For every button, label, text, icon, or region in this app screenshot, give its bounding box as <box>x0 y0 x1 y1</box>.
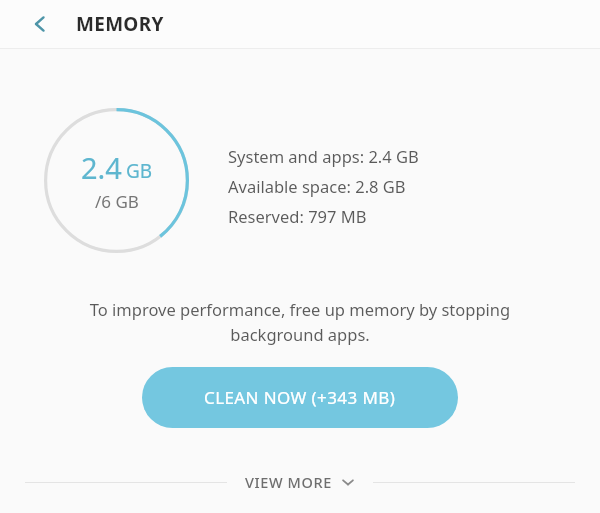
staticText: /6 GB <box>95 190 139 213</box>
staticText: Reserved: 797 MB <box>228 205 367 227</box>
staticText: GB <box>126 158 153 184</box>
button[interactable]: VIEW MORE <box>0 459 600 505</box>
staticText: System and apps: 2.4 GB <box>228 145 419 167</box>
staticText: VIEW MORE <box>245 472 332 492</box>
staticText: CLEAN NOW (+343 MB) <box>204 386 396 409</box>
staticText: To improve performance, free up memory b… <box>70 298 530 345</box>
staticText: Available space: 2.8 GB <box>228 175 406 197</box>
button[interactable]: CLEAN NOW (+343 MB) <box>142 367 458 428</box>
button[interactable]: Back <box>20 4 60 44</box>
staticText: 2.4 <box>81 148 122 187</box>
staticText: MEMORY <box>76 11 164 37</box>
